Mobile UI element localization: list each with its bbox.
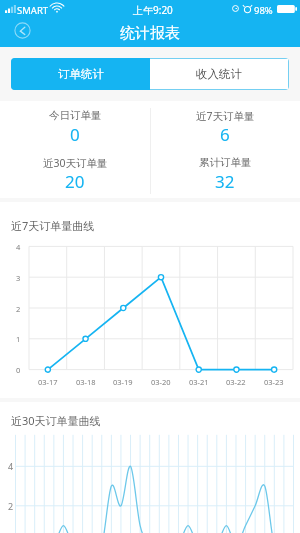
staticText: 03-22	[226, 377, 246, 387]
staticText: 近7天订单量曲线	[11, 218, 95, 233]
staticText: 2	[16, 304, 21, 314]
button[interactable]: 近30天订单量	[0, 148, 150, 195]
staticText: 03-23	[264, 377, 284, 387]
staticText: 98%	[254, 4, 273, 17]
staticText: 2	[8, 500, 14, 512]
staticText: 1	[16, 334, 21, 344]
staticText: 今日订单量	[49, 109, 102, 122]
staticText: 4	[8, 460, 14, 472]
staticText: 03-18	[76, 377, 96, 387]
staticText: 4	[16, 242, 21, 252]
staticText: 近30天订单量曲线	[11, 413, 101, 428]
staticText: 03-20	[151, 377, 171, 387]
button[interactable]: 今日订单量	[0, 101, 150, 148]
staticText: 32	[215, 170, 235, 193]
staticText: 订单统计	[58, 67, 104, 81]
staticText: 统计报表	[120, 24, 180, 43]
staticText: 20	[65, 170, 85, 193]
staticText: 03-17	[38, 377, 58, 387]
button[interactable]: 累计订单量	[150, 148, 300, 195]
staticText: 03-19	[113, 377, 133, 387]
staticText: 3	[16, 273, 21, 283]
staticText: 收入统计	[196, 67, 242, 81]
staticText: 近7天订单量	[196, 109, 255, 123]
staticText: 上午9:20	[133, 3, 173, 17]
staticText: SMART	[17, 4, 49, 17]
staticText: 6	[220, 123, 230, 146]
button[interactable]: 近7天订单量	[150, 101, 300, 148]
staticText: 0	[16, 365, 21, 375]
staticText: 近30天订单量	[43, 156, 108, 170]
staticText: 03-21	[189, 377, 209, 387]
staticText: 累计订单量	[199, 156, 252, 169]
button[interactable]: 订单统计	[11, 58, 150, 90]
staticText: 0	[70, 123, 80, 146]
button[interactable]: Back	[10, 18, 34, 42]
button[interactable]: 收入统计	[150, 59, 288, 89]
